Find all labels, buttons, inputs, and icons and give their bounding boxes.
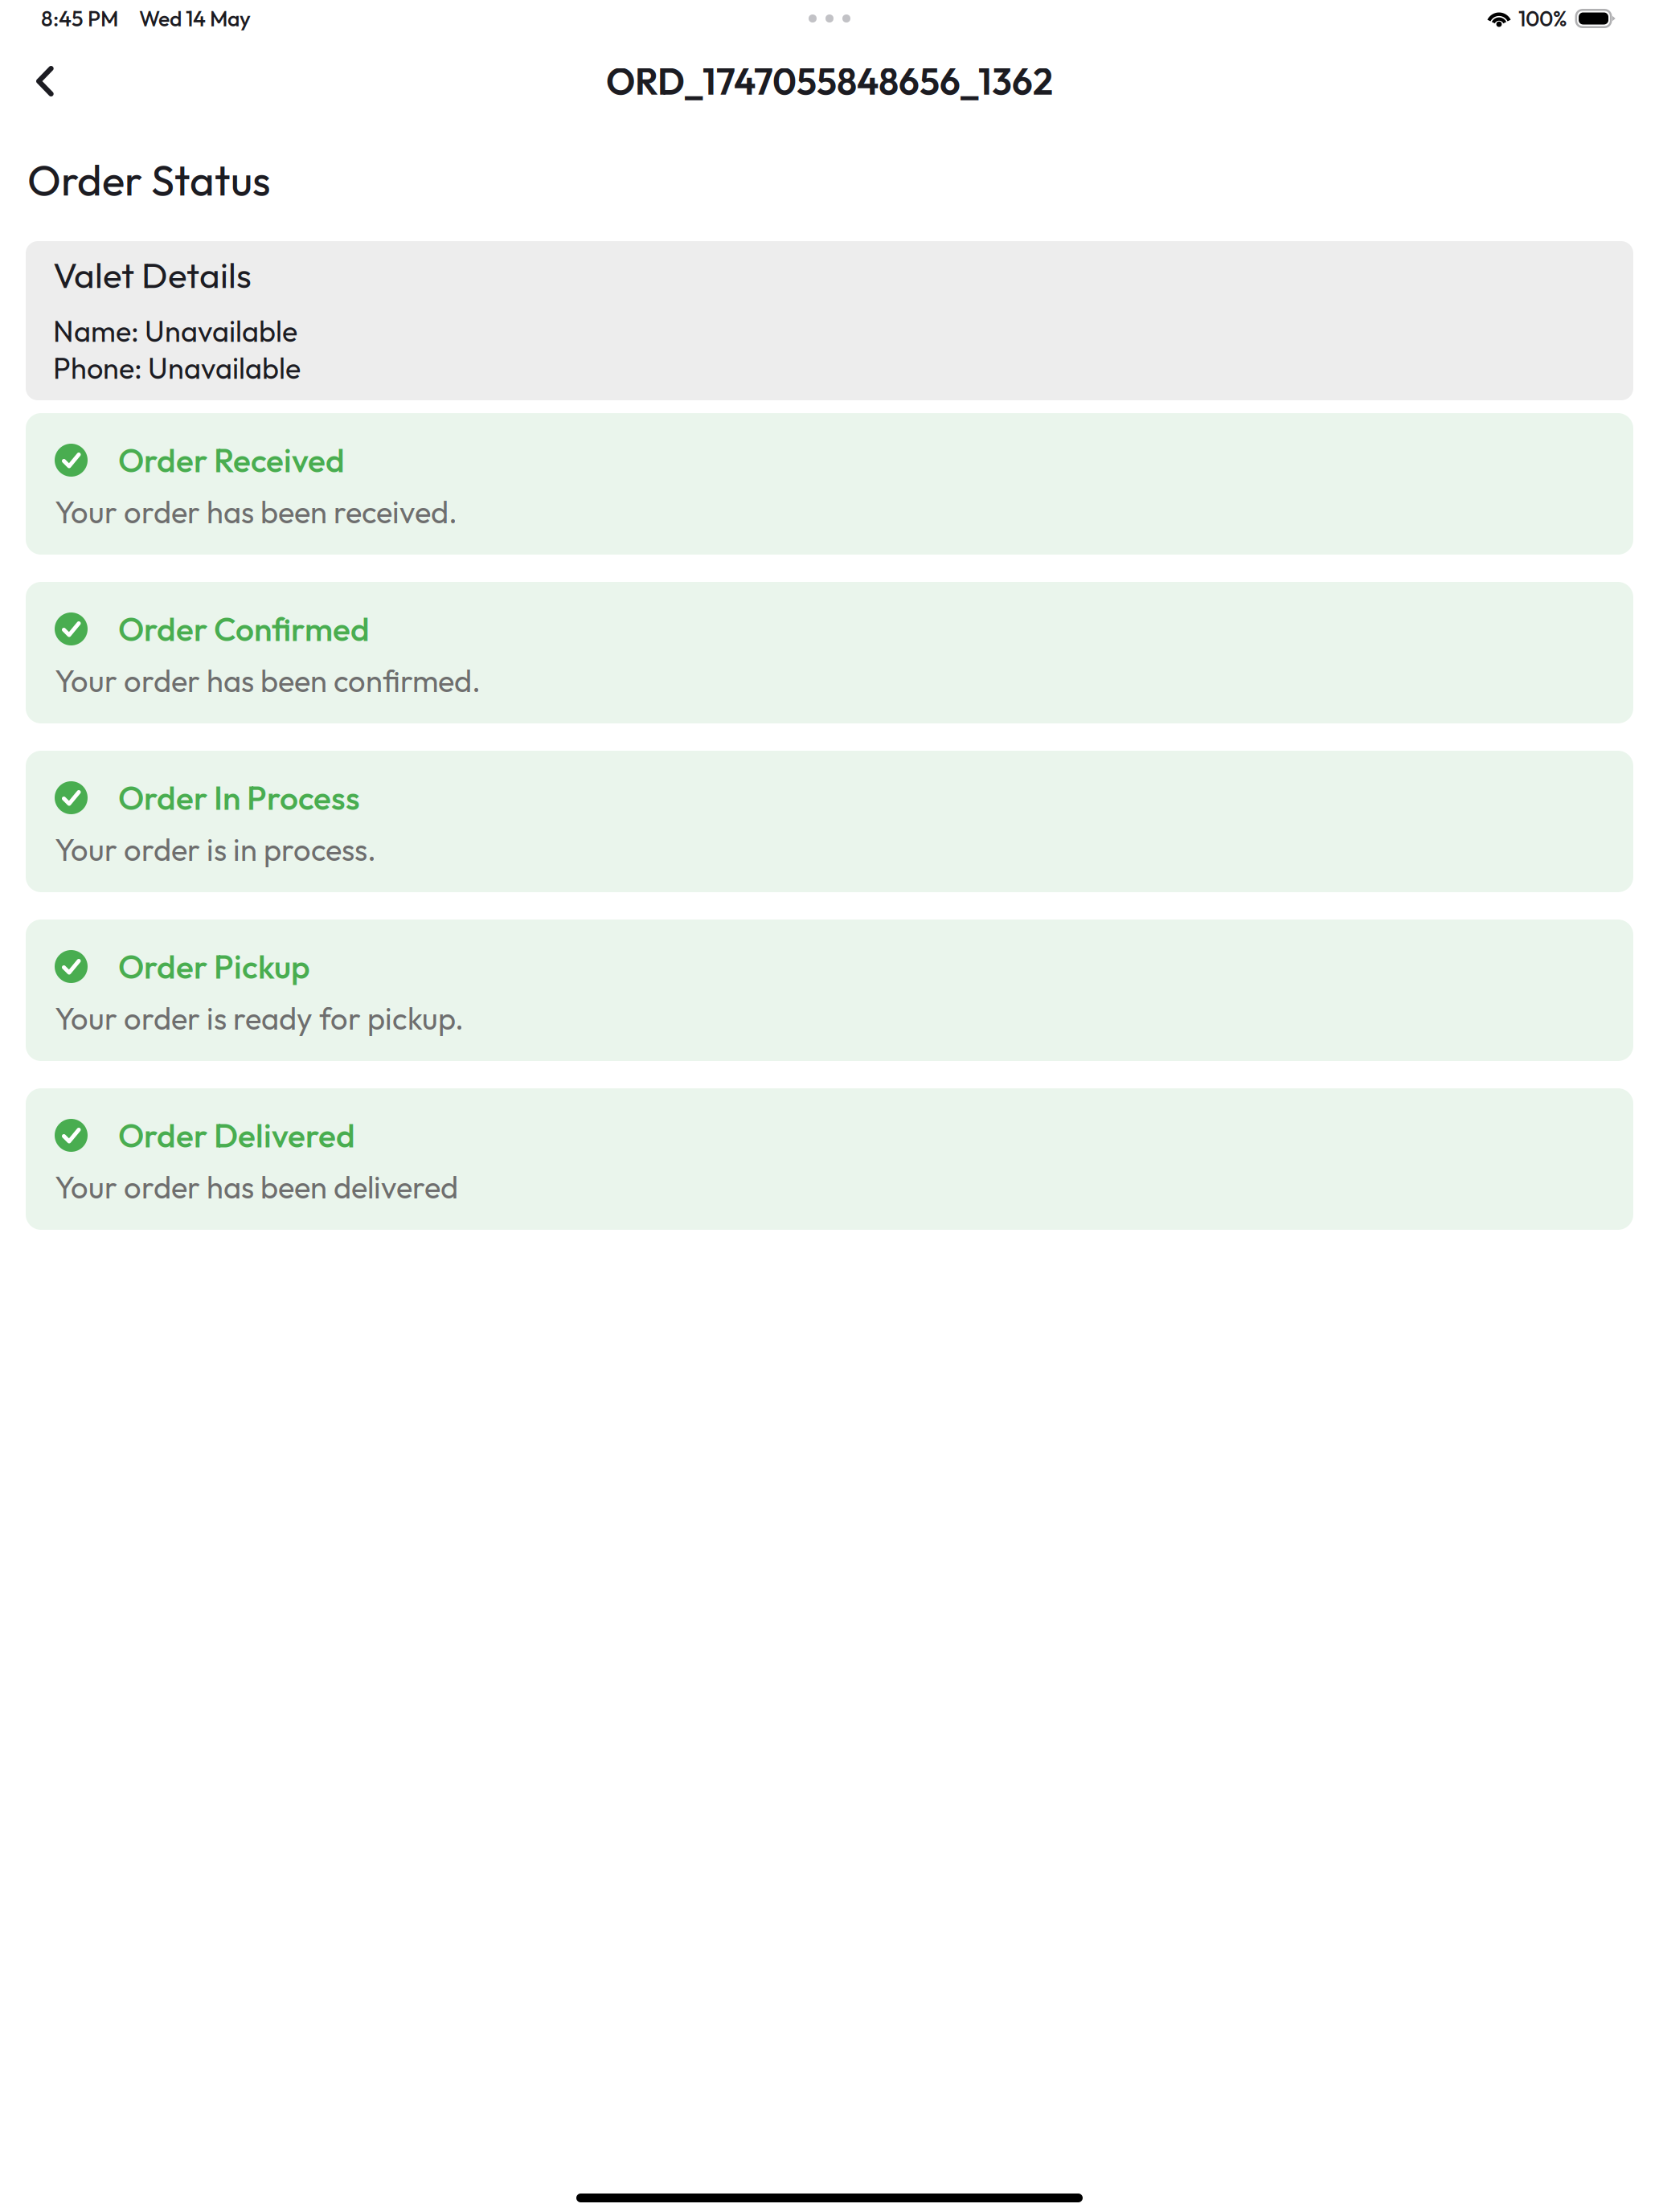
staticText: Your order is in process.: [55, 830, 376, 869]
staticText: Your order has been confirmed.: [55, 662, 481, 700]
staticText: 100%: [1518, 5, 1567, 32]
staticText: Wed 14 May: [139, 5, 251, 32]
staticText: ORD_1747055848656_1362: [606, 58, 1053, 104]
staticText: Order Confirmed: [118, 608, 370, 650]
staticText: Your order is ready for pickup.: [55, 999, 464, 1038]
staticText: Your order has been delivered: [55, 1168, 458, 1206]
staticText: Order Received: [118, 440, 345, 481]
staticText: Your order has been received.: [55, 493, 457, 531]
staticText: Valet Details: [53, 253, 252, 297]
staticText: Order Pickup: [118, 946, 310, 987]
staticText: Order Status: [27, 153, 271, 207]
staticText: Phone: Unavailable: [53, 350, 301, 386]
staticText: 8:45 PM: [41, 5, 118, 32]
button[interactable]: Back: [22, 56, 68, 106]
staticText: Order Delivered: [118, 1115, 355, 1156]
staticText: Order In Process: [118, 777, 360, 818]
staticText: Name: Unavailable: [53, 313, 297, 349]
